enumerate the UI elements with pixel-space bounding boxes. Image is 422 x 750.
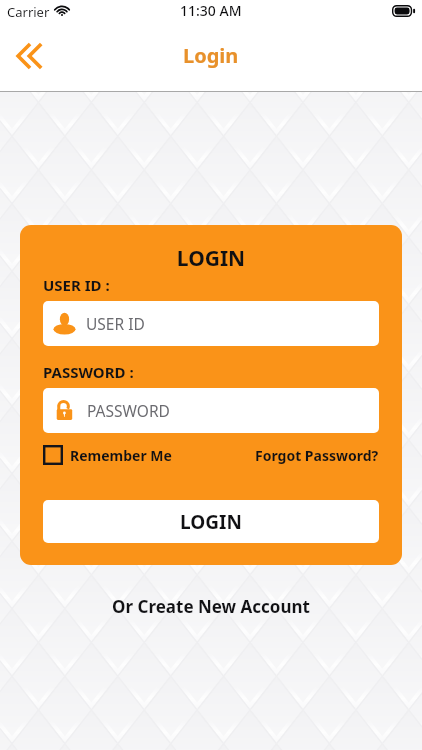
staticText: USER ID [86,313,145,334]
staticText: Carrier [7,3,50,21]
staticText: LOGIN [180,509,242,535]
staticText: 11:30 AM [180,1,242,20]
staticText: PASSWORD [87,400,170,421]
button[interactable]: Back [4,31,54,81]
button[interactable]: USER ID [43,301,379,346]
button[interactable]: Remember Me [43,445,172,465]
button[interactable]: PASSWORD [43,388,379,433]
staticText: LOGIN [43,244,379,273]
staticText: Remember Me [70,446,172,465]
staticText: PASSWORD : [43,362,134,382]
button[interactable]: Forgot Password? [255,446,379,465]
button[interactable]: Or Create New Account [0,595,422,618]
staticText: Login [183,42,239,69]
staticText: USER ID : [43,275,110,295]
button[interactable]: LOGIN [43,500,379,543]
